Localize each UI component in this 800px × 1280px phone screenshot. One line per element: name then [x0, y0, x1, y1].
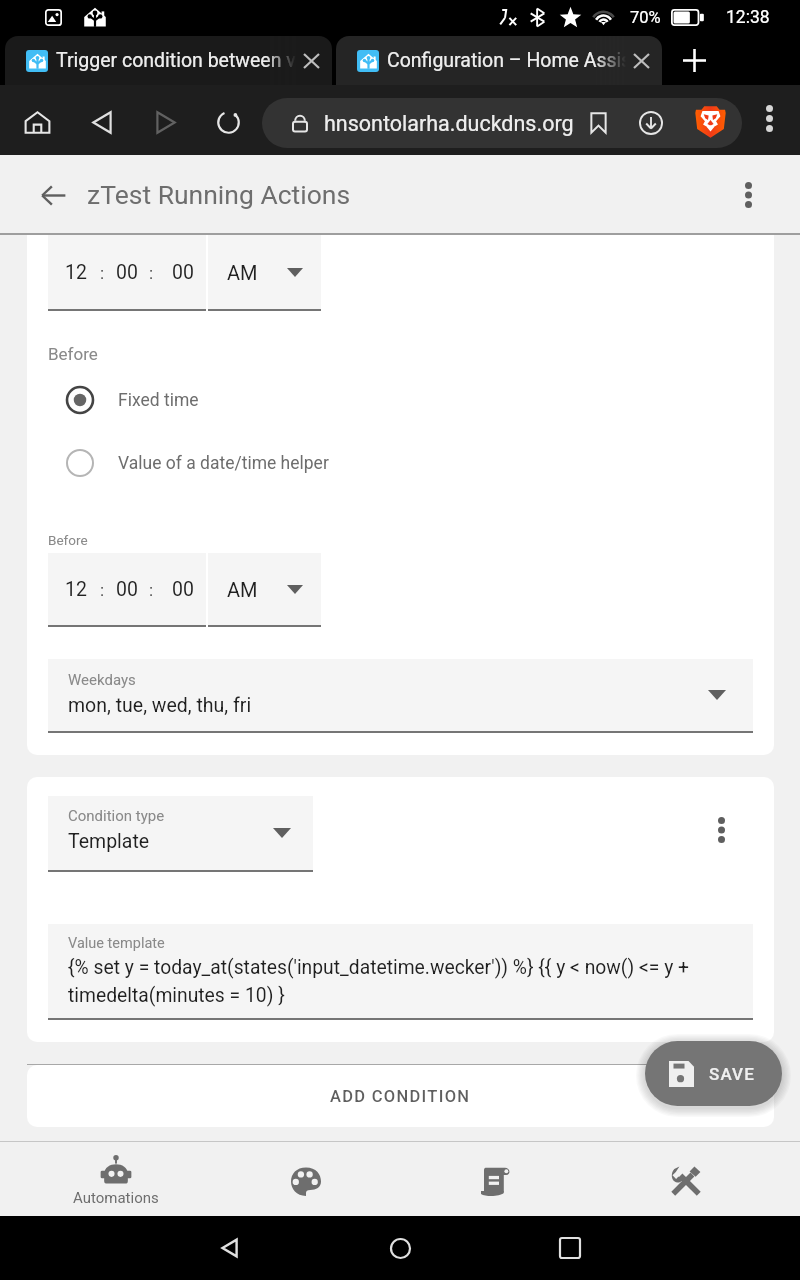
staticText: : [100, 263, 105, 283]
button[interactable]: Forward [144, 101, 186, 143]
staticText: {% set y = today_at(states('input_dateti… [68, 956, 737, 1007]
button[interactable]: Close tab [626, 46, 656, 76]
button[interactable]: SAVE [645, 1041, 782, 1106]
staticText: zTest Running Actions [87, 179, 351, 210]
staticText: 00 [172, 578, 194, 601]
button[interactable]: AM [208, 235, 321, 309]
button[interactable]: More options [747, 96, 791, 140]
staticText: Value of a date/time helper [118, 453, 329, 474]
staticText: Before [48, 532, 88, 548]
staticText: 00 [116, 578, 138, 601]
staticText: Condition type [68, 807, 165, 825]
button[interactable]: ADD CONDITION [27, 1065, 774, 1127]
button[interactable]: Back [81, 101, 123, 143]
button[interactable]: Weekdays [48, 659, 753, 731]
button[interactable]: Recents [485, 1216, 655, 1280]
button[interactable]: Scenes [274, 1157, 338, 1205]
staticText: Configuration – Home Assista [387, 49, 626, 72]
staticText: Weekdays [68, 671, 136, 689]
button[interactable]: Bookmark [579, 104, 617, 142]
staticText: 70% [630, 8, 661, 27]
button[interactable]: Overflow menu [726, 173, 770, 217]
button[interactable]: Trigger condition between val [5, 36, 332, 85]
staticText: 12:38 [726, 7, 770, 28]
button[interactable]: Configuration – Home Assista [336, 36, 662, 85]
button[interactable]: Condition type [48, 796, 313, 870]
staticText: AM [227, 261, 258, 284]
button[interactable]: Reload [207, 101, 249, 143]
staticText: 12 [65, 261, 87, 284]
button[interactable]: Automations [20, 1142, 212, 1216]
staticText: : [149, 580, 154, 600]
staticText: 00 [172, 261, 194, 284]
staticText: : [100, 580, 105, 600]
staticText: : [149, 263, 154, 283]
staticText: Automations [73, 1189, 159, 1207]
staticText: ADD CONDITION [330, 1087, 471, 1106]
button[interactable]: Condition options [699, 808, 743, 852]
staticText: AM [227, 578, 258, 601]
staticText: 12 [65, 578, 87, 601]
button[interactable]: Close tab [296, 46, 326, 76]
button[interactable]: Scripts [464, 1157, 528, 1205]
button[interactable]: Brave shields [689, 101, 731, 143]
staticText: 00 [116, 261, 138, 284]
staticText: Value template [68, 935, 165, 952]
staticText: Template [68, 830, 150, 853]
staticText: Trigger condition between val [56, 49, 296, 72]
button[interactable]: Downloads [632, 104, 670, 142]
staticText: Before [48, 344, 98, 364]
button[interactable]: 12 [48, 235, 206, 309]
button[interactable]: Fixed time [64, 381, 544, 419]
staticText: mon, tue, wed, thu, fri [68, 694, 252, 717]
button[interactable]: Value template [48, 924, 753, 1018]
staticText: Fixed time [118, 390, 199, 411]
button[interactable]: Home [16, 101, 58, 143]
button[interactable]: Back [31, 173, 75, 217]
staticText: hnsontolarha.duckdns.org [324, 111, 574, 136]
button[interactable]: Home [315, 1216, 485, 1280]
button[interactable]: Value of a date/time helper [64, 444, 544, 482]
button[interactable]: Back [145, 1216, 315, 1280]
button[interactable]: Tools [654, 1157, 718, 1205]
button[interactable]: AM [208, 553, 321, 625]
button[interactable]: 12 [48, 553, 206, 625]
staticText: SAVE [709, 1064, 755, 1084]
button[interactable]: New tab [667, 35, 721, 86]
button[interactable]: hnsontolarha.duckdns.org [262, 98, 742, 148]
